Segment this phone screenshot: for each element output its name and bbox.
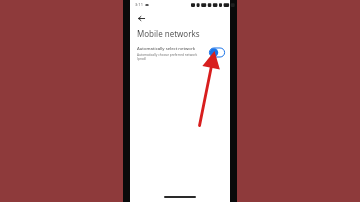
staticText: (prod) bbox=[137, 57, 147, 61]
staticText: Automatically select network bbox=[137, 46, 196, 52]
staticText: Automatically choose preferred network bbox=[137, 53, 198, 57]
button[interactable]: Automatically select network bbox=[130, 46, 230, 61]
staticText: 3:11 bbox=[135, 2, 143, 7]
button[interactable]: Back bbox=[135, 12, 147, 24]
button[interactable]: Automatically select network toggle bbox=[209, 47, 225, 58]
staticText: Mobile networks bbox=[137, 28, 200, 39]
